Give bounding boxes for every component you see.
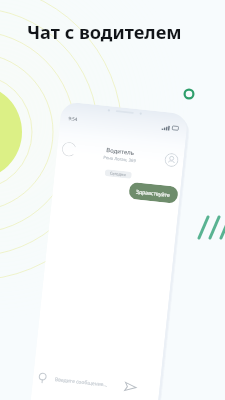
staticText: Рено Логан, 369 [103, 155, 136, 164]
staticText: Чат с водителем [27, 20, 182, 45]
staticText: 9:54 [68, 115, 79, 122]
staticText: Здравствуйте [136, 187, 171, 198]
button[interactable]: Profile [164, 152, 179, 168]
staticText: Введите сообщение... [55, 376, 124, 390]
button[interactable]: Attach location [36, 372, 49, 384]
staticText: Сегодня [110, 171, 127, 177]
staticText: Водитель [106, 146, 135, 157]
button[interactable]: Send [123, 379, 138, 395]
button[interactable]: Back [61, 141, 77, 157]
